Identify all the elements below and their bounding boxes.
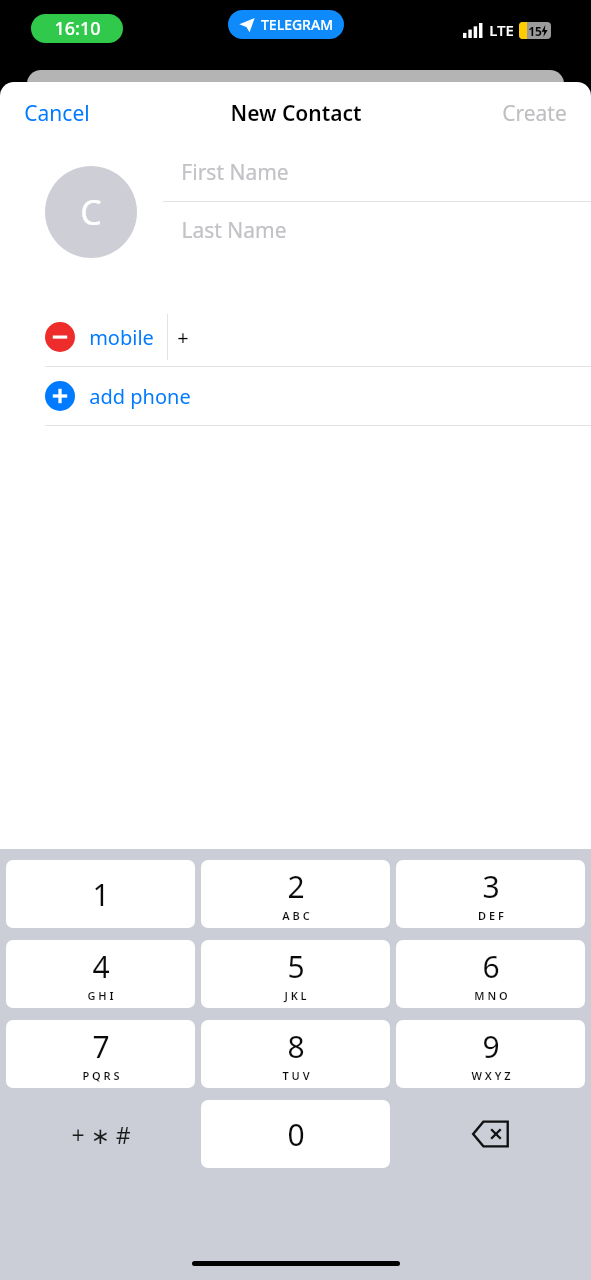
button[interactable]: Remove phone [45, 322, 75, 352]
button[interactable]: Cancel [0, 89, 114, 138]
staticText: Create [502, 99, 567, 128]
staticText: 8 [287, 1026, 305, 1067]
staticText: 15 [528, 23, 542, 39]
button[interactable]: mobile [89, 324, 154, 351]
staticText: add phone [89, 383, 191, 410]
button[interactable]: Backspace [396, 1100, 585, 1168]
staticText: Last Name [181, 216, 287, 245]
button[interactable]: 7 [6, 1020, 195, 1088]
button[interactable]: 9 [396, 1020, 585, 1088]
staticText: 5 [287, 946, 305, 987]
staticText: 4 [92, 946, 110, 987]
button[interactable]: 8 [201, 1020, 390, 1088]
staticText: 2 [287, 866, 305, 907]
staticText: 1 [92, 874, 110, 915]
staticText: T U V [282, 1068, 310, 1083]
staticText: TELEGRAM [261, 15, 333, 34]
staticText: G H I [87, 988, 114, 1003]
staticText: 9 [482, 1026, 500, 1067]
button[interactable]: add phone [0, 367, 591, 425]
staticText: + ∗ # [71, 1119, 131, 1150]
button[interactable]: Add photo [45, 166, 137, 258]
staticText: J K L [284, 988, 307, 1003]
staticText: D E F [478, 908, 504, 923]
staticText: + [177, 324, 189, 351]
staticText: 7 [92, 1026, 110, 1067]
button[interactable]: 4 [6, 940, 195, 1008]
button[interactable]: 5 [201, 940, 390, 1008]
staticText: 3 [482, 866, 500, 907]
staticText: W X Y Z [471, 1068, 511, 1083]
staticText: 16:10 [54, 16, 101, 41]
staticText: Cancel [24, 99, 90, 128]
staticText: mobile [89, 324, 154, 351]
button[interactable]: 6 [396, 940, 585, 1008]
button[interactable]: 0 [201, 1100, 390, 1168]
staticText: C [80, 189, 102, 235]
button[interactable]: Create [478, 89, 591, 138]
staticText: New Contact [230, 99, 362, 128]
staticText: 6 [482, 946, 500, 987]
staticText: P Q R S [82, 1068, 120, 1083]
button[interactable]: First Name [163, 144, 591, 201]
staticText: A B C [282, 908, 310, 923]
staticText: 0 [287, 1114, 305, 1155]
button[interactable]: Last Name [163, 202, 591, 259]
staticText: LTE [489, 20, 514, 40]
button[interactable]: 2 [201, 860, 390, 928]
staticText: M N O [474, 988, 508, 1003]
button[interactable]: + ∗ # [6, 1100, 195, 1168]
button[interactable]: 3 [396, 860, 585, 928]
button[interactable]: 1 [6, 860, 195, 928]
staticText: First Name [181, 158, 289, 187]
